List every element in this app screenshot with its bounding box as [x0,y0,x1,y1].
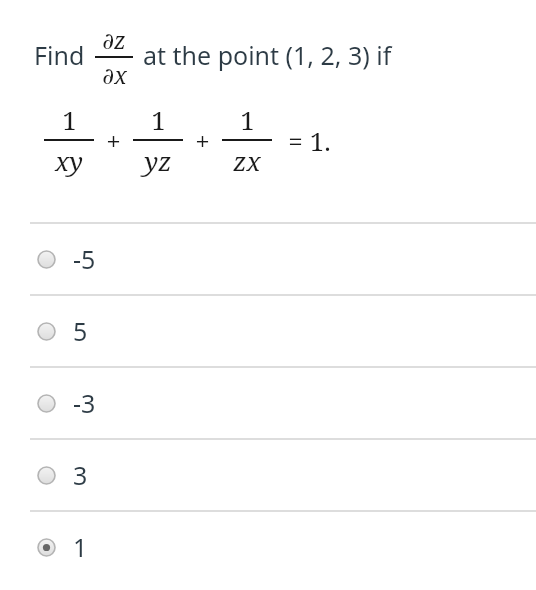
staticText: 5 [73,314,88,348]
staticText: 3 [73,458,88,492]
button[interactable]: 5 [0,296,536,366]
staticText: at the point (1, 2, 3) if [143,38,392,72]
button[interactable]: -5 [0,224,536,294]
button[interactable]: -3 [0,368,536,438]
button[interactable]: 3 [0,440,536,510]
staticText: = 1. [288,123,331,158]
staticText: 1 [62,102,77,137]
staticText: ∂x [102,59,127,90]
staticText: yz [144,143,172,178]
staticText: xy [55,143,83,178]
staticText: ∂z [102,24,126,55]
staticText: Find [34,38,85,72]
staticText: 1 [73,530,88,564]
staticText: 1 [240,102,255,137]
staticText: + [195,123,210,158]
staticText: -3 [73,386,96,420]
staticText: -5 [73,242,96,276]
staticText: + [106,123,121,158]
staticText: 1 [151,102,166,137]
button[interactable]: 1 [0,512,536,582]
staticText: zx [233,143,261,178]
